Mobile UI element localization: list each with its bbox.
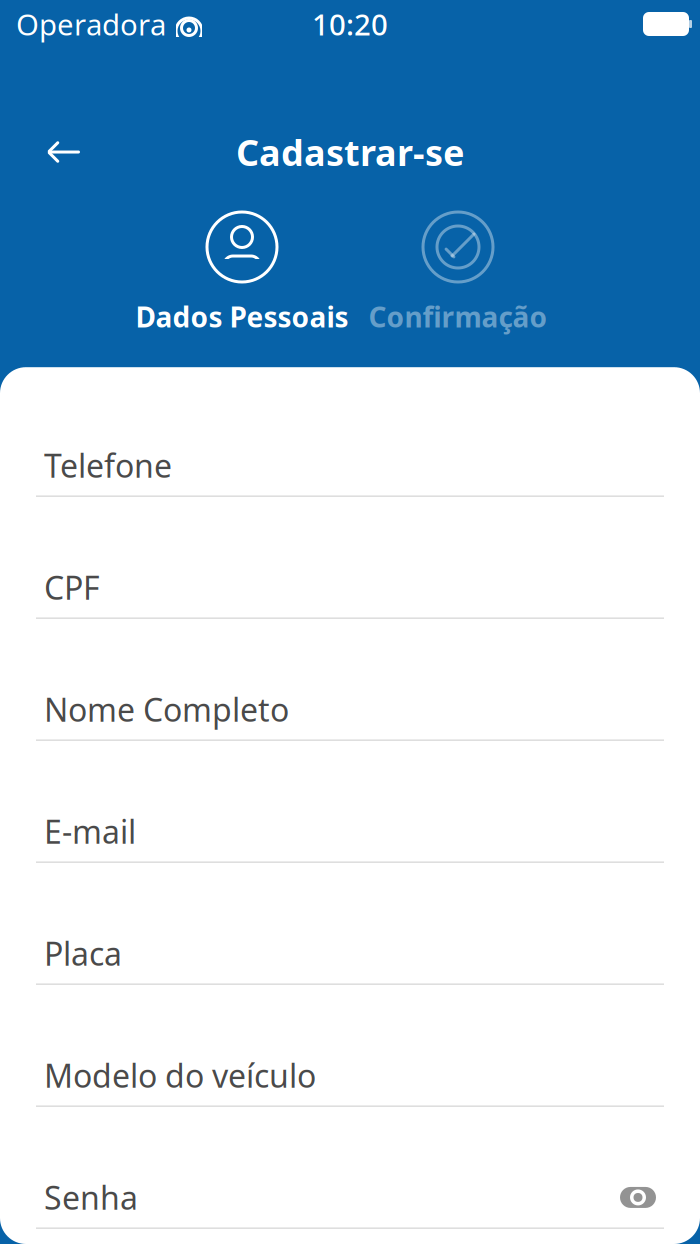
button[interactable]: Voltar <box>36 124 92 180</box>
staticText: Nome Completo <box>44 688 289 731</box>
staticText: Telefone <box>44 444 172 487</box>
button[interactable]: Modelo do veículo <box>0 1015 700 1137</box>
staticText: Confirmação <box>368 298 547 335</box>
button[interactable]: Dados Pessoais <box>134 210 350 335</box>
button[interactable]: Confirmação <box>350 210 566 335</box>
staticText: Placa <box>44 932 122 975</box>
staticText: Cadastrar-se <box>236 128 464 176</box>
staticText: CPF <box>44 566 100 609</box>
staticText: 10:20 <box>312 4 388 43</box>
staticText: Dados Pessoais <box>135 298 348 335</box>
staticText: Modelo do veículo <box>44 1054 316 1097</box>
button[interactable]: E-mail <box>0 771 700 893</box>
button[interactable]: Senha <box>0 1137 700 1244</box>
button[interactable]: Nome Completo <box>0 649 700 771</box>
button[interactable]: Placa <box>0 893 700 1015</box>
button[interactable]: Telefone <box>0 405 700 527</box>
staticText: Senha <box>44 1176 138 1219</box>
button[interactable]: CPF <box>0 527 700 649</box>
staticText: E-mail <box>44 810 136 853</box>
staticText: Operadora <box>16 4 166 43</box>
